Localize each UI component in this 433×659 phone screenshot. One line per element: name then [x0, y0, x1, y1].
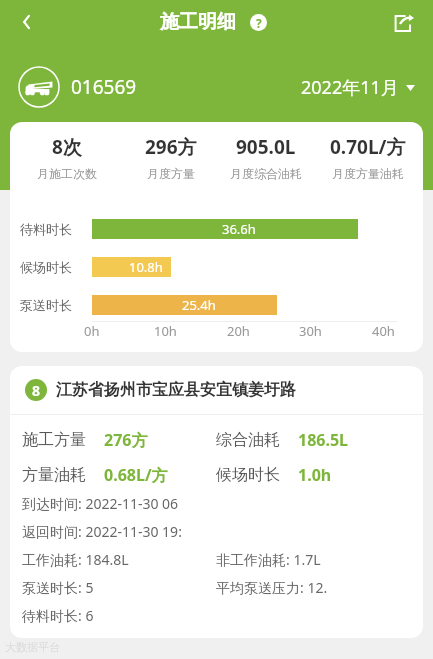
staticText: 276方	[104, 429, 148, 451]
staticText: 待料时长: 6	[22, 606, 94, 625]
staticText: 返回时间: 2022-11-30 19:	[22, 522, 182, 541]
staticText: 候场时长	[216, 465, 280, 485]
staticText: 30h	[299, 322, 322, 340]
button[interactable]	[389, 7, 419, 37]
staticText: 方量油耗	[22, 465, 86, 485]
staticText: 25.4h	[182, 296, 216, 314]
staticText: 候场时长	[20, 259, 72, 275]
staticText: 0.70L/方	[330, 134, 406, 160]
staticText: 江苏省扬州市宝应县安宜镇姜圩路	[56, 380, 296, 400]
staticText: 8次	[52, 134, 82, 160]
staticText: 到达时间: 2022-11-30 06	[22, 494, 179, 513]
staticText: 施工方量	[22, 430, 86, 450]
staticText: 泵送时长	[20, 297, 72, 313]
staticText: 月度方量	[147, 166, 195, 181]
staticText: 0.68L/方	[104, 464, 168, 486]
staticText: 0h	[84, 322, 100, 340]
button[interactable]	[10, 5, 44, 39]
staticText: ?	[256, 15, 262, 31]
staticText: 平均泵送压力: 12.	[216, 578, 423, 597]
button[interactable]: 2022年11月	[301, 75, 415, 100]
staticText: 016569	[71, 74, 137, 100]
button[interactable]: 8	[25, 379, 423, 401]
staticText: 工作油耗: 184.8L	[22, 550, 216, 569]
staticText: 非工作油耗: 1.7L	[216, 550, 423, 569]
staticText: 待料时长	[20, 221, 72, 237]
staticText: 186.5L	[298, 429, 349, 451]
staticText: 296方	[145, 134, 197, 160]
staticText: 2022年11月	[301, 75, 399, 100]
staticText: 1.0h	[298, 464, 332, 486]
staticText: 905.0L	[236, 134, 296, 160]
staticText: 综合油耗	[216, 430, 280, 450]
staticText: 大数据平台	[5, 640, 60, 654]
staticText: 10h	[154, 322, 177, 340]
staticText: 泵送时长: 5	[22, 578, 216, 597]
staticText: 10.8h	[129, 258, 163, 276]
staticText: 施工明细	[160, 10, 236, 34]
staticText: 月度方量油耗	[332, 166, 404, 181]
staticText: 月度综合油耗	[230, 166, 302, 181]
staticText: 8	[32, 381, 41, 400]
staticText: 36.6h	[222, 220, 256, 238]
staticText: 月施工次数	[37, 166, 97, 181]
staticText: 40h	[372, 322, 395, 340]
staticText: 20h	[227, 322, 250, 340]
